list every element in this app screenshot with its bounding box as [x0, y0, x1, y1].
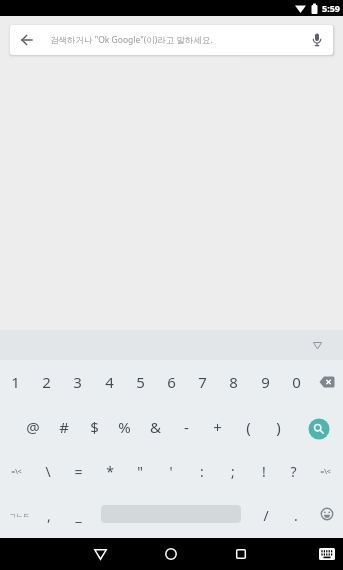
staticText: @ — [26, 417, 40, 437]
button[interactable]: & — [140, 404, 171, 450]
button[interactable] — [20, 33, 34, 47]
button[interactable]: ; — [217, 450, 248, 493]
button[interactable]: : — [186, 450, 217, 493]
button[interactable]: 8 — [218, 360, 249, 404]
staticText: , — [47, 506, 51, 525]
button[interactable] — [311, 360, 342, 404]
staticText: 3 — [73, 372, 82, 392]
staticText: 5:59 — [322, 2, 340, 14]
button[interactable] — [296, 404, 342, 450]
button[interactable]: _ — [63, 493, 94, 538]
staticText: ) — [276, 417, 281, 437]
button[interactable]: , — [33, 493, 64, 538]
staticText: & — [150, 417, 161, 437]
staticText: 5 — [136, 372, 145, 392]
button[interactable]: 6 — [156, 360, 187, 404]
button[interactable]: 1 — [0, 360, 31, 404]
staticText: ' — [169, 462, 173, 481]
button[interactable]: 5 — [125, 360, 156, 404]
button[interactable] — [313, 341, 322, 350]
staticText: ? — [290, 462, 297, 481]
button[interactable]: ( — [233, 404, 264, 450]
button[interactable] — [157, 538, 185, 570]
button[interactable]: # — [48, 404, 79, 450]
button[interactable]: 9 — [250, 360, 281, 404]
button[interactable]: ? — [278, 450, 309, 493]
button[interactable] — [86, 538, 114, 570]
button[interactable] — [310, 33, 324, 47]
staticText: / — [263, 506, 269, 525]
staticText: 검색하거나 "Ok Google"(이)라고 말하세요. — [50, 34, 213, 46]
staticText: ! — [262, 462, 266, 481]
button[interactable]: ! — [248, 450, 279, 493]
button[interactable]: " — [124, 450, 155, 493]
staticText: =\< — [320, 467, 331, 477]
button[interactable]: ) — [263, 404, 294, 450]
button[interactable]: ' — [155, 450, 186, 493]
staticText: \ — [45, 462, 51, 481]
button[interactable]: / — [250, 493, 281, 538]
staticText: - — [184, 417, 189, 437]
button[interactable]: 4 — [94, 360, 125, 404]
button[interactable]: $ — [79, 404, 110, 450]
staticText: _ — [75, 506, 82, 525]
button[interactable] — [313, 538, 341, 570]
staticText: ; — [231, 462, 235, 481]
button[interactable]: 7 — [187, 360, 218, 404]
staticText: 0 — [292, 372, 301, 392]
staticText: $ — [90, 417, 99, 437]
button[interactable]: * — [94, 450, 125, 493]
button[interactable]: 3 — [62, 360, 93, 404]
staticText: 6 — [167, 372, 176, 392]
staticText: : — [200, 462, 204, 481]
staticText: 9 — [261, 372, 270, 392]
button[interactable]: % — [109, 404, 140, 450]
staticText: * — [106, 462, 114, 481]
button[interactable]: =\< — [1, 450, 32, 493]
button[interactable]: \ — [32, 450, 63, 493]
button[interactable]: = — [63, 450, 94, 493]
staticText: 1 — [11, 372, 20, 392]
staticText: " — [137, 462, 143, 481]
staticText: 2 — [42, 372, 51, 392]
staticText: 8 — [229, 372, 238, 392]
staticText: ㄱㄴㄷ — [9, 511, 30, 520]
button[interactable]: . — [280, 493, 311, 538]
staticText: # — [59, 417, 69, 437]
staticText: =\< — [11, 467, 22, 477]
staticText: 4 — [105, 372, 114, 392]
staticText: = — [74, 462, 83, 481]
button[interactable]: 2 — [31, 360, 62, 404]
button[interactable]: + — [202, 404, 233, 450]
button[interactable]: =\< — [310, 450, 341, 493]
button[interactable] — [227, 538, 255, 570]
button[interactable]: ㄱㄴㄷ — [4, 493, 35, 538]
staticText: ( — [246, 417, 251, 437]
staticText: % — [118, 417, 131, 437]
button[interactable] — [311, 493, 342, 538]
button[interactable]: 0 — [281, 360, 312, 404]
staticText: + — [213, 417, 222, 437]
button[interactable]: 검색하거나 "Ok Google"(이)라고 말하세요. — [10, 25, 333, 55]
button[interactable]: - — [171, 404, 202, 450]
staticText: . — [294, 506, 298, 525]
button[interactable]: @ — [17, 404, 48, 450]
staticText: 7 — [198, 372, 207, 392]
